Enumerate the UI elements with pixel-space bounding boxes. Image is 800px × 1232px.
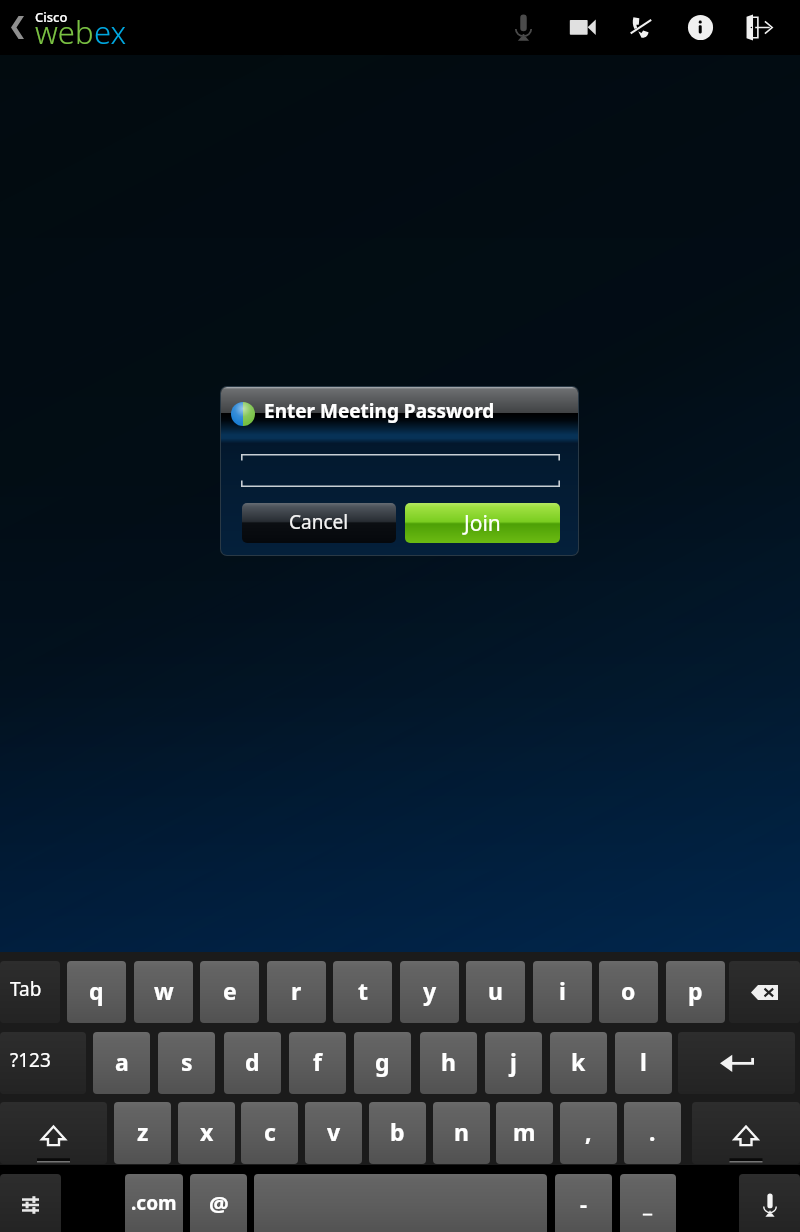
button[interactable]: h [420, 1032, 477, 1094]
staticText: u [488, 975, 503, 1006]
staticText: - [580, 1188, 588, 1218]
staticText: Tab [10, 976, 42, 1002]
staticText: Enter Meeting Password [264, 398, 495, 424]
button[interactable]: a [93, 1032, 150, 1094]
button[interactable]: Space [254, 1174, 547, 1232]
staticText: r [291, 975, 302, 1006]
button[interactable]: Mute microphone [494, 0, 553, 55]
button[interactable]: z [114, 1102, 171, 1164]
staticText: b [390, 1116, 405, 1147]
button[interactable]: , [560, 1102, 617, 1164]
button[interactable]: Hang up [612, 0, 671, 55]
button[interactable]: Shift [692, 1102, 800, 1164]
staticText: .com [131, 1190, 177, 1216]
staticText: w [154, 975, 174, 1006]
button[interactable]: Leave meeting [730, 0, 789, 55]
staticText: a [115, 1046, 129, 1077]
button[interactable]: Shift [0, 1102, 107, 1164]
button[interactable]: .com [125, 1174, 183, 1232]
button[interactable]: @ [190, 1174, 247, 1232]
button[interactable]: o [599, 961, 658, 1023]
button[interactable]: Back [0, 0, 34, 55]
button[interactable]: j [485, 1032, 542, 1094]
button[interactable]: Enter [678, 1032, 795, 1094]
button[interactable]: Join [405, 503, 560, 543]
staticText: d [245, 1046, 260, 1077]
staticText: ?123 [10, 1047, 51, 1073]
staticText: Join [464, 509, 501, 538]
button[interactable]: Password field [241, 454, 560, 487]
button[interactable]: s [158, 1032, 215, 1094]
staticText: f [313, 1046, 322, 1077]
button[interactable]: g [354, 1032, 411, 1094]
button[interactable]: - [555, 1174, 612, 1232]
staticText: x [200, 1116, 214, 1147]
button[interactable]: Cancel [242, 503, 396, 543]
button[interactable]: q [67, 961, 126, 1023]
button[interactable]: n [433, 1102, 490, 1164]
staticText: p [688, 975, 703, 1006]
button[interactable]: m [496, 1102, 553, 1164]
staticText: h [441, 1046, 456, 1077]
button[interactable]: i [533, 961, 592, 1023]
button[interactable]: w [134, 961, 193, 1023]
button[interactable]: x [178, 1102, 235, 1164]
button[interactable]: . [624, 1102, 681, 1164]
button[interactable]: Stop video [553, 0, 612, 55]
staticText: n [454, 1116, 469, 1147]
button[interactable]: c [241, 1102, 298, 1164]
staticText: ex [94, 11, 127, 53]
button[interactable]: _ [620, 1174, 676, 1232]
staticText: z [137, 1116, 149, 1147]
button[interactable]: u [466, 961, 525, 1023]
staticText: q [89, 975, 104, 1006]
staticText: e [223, 975, 237, 1006]
button[interactable]: Input settings [0, 1174, 61, 1232]
button[interactable]: ?123 [0, 1032, 86, 1094]
staticText: web [35, 11, 94, 53]
staticText: m [513, 1116, 536, 1147]
staticText: _ [643, 1188, 653, 1218]
button[interactable]: v [305, 1102, 362, 1164]
staticText: , [585, 1116, 592, 1147]
button[interactable]: t [333, 961, 392, 1023]
staticText: g [375, 1046, 390, 1077]
staticText: @ [209, 1188, 229, 1218]
staticText: l [640, 1046, 647, 1077]
staticText: s [181, 1046, 193, 1077]
button[interactable]: l [615, 1032, 672, 1094]
button[interactable]: e [200, 961, 259, 1023]
staticText: Cisco [35, 8, 68, 26]
button[interactable]: Tab [0, 961, 60, 1023]
staticText: y [423, 975, 437, 1006]
staticText: Cancel [289, 509, 349, 535]
staticText: . [649, 1116, 656, 1147]
button[interactable]: Backspace [729, 961, 800, 1023]
staticText: k [571, 1046, 586, 1077]
staticText: i [559, 975, 566, 1006]
button[interactable]: k [550, 1032, 607, 1094]
button[interactable]: y [400, 961, 459, 1023]
staticText: v [327, 1116, 341, 1147]
button[interactable]: b [369, 1102, 426, 1164]
button[interactable]: d [224, 1032, 281, 1094]
button[interactable]: p [666, 961, 725, 1023]
staticText: j [510, 1046, 517, 1077]
button[interactable]: Voice input [739, 1174, 800, 1232]
button[interactable]: f [289, 1032, 346, 1094]
button[interactable]: r [267, 961, 326, 1023]
staticText: t [358, 975, 368, 1006]
staticText: c [264, 1116, 276, 1147]
button[interactable]: Meeting info [671, 0, 730, 55]
staticText: o [621, 975, 636, 1006]
